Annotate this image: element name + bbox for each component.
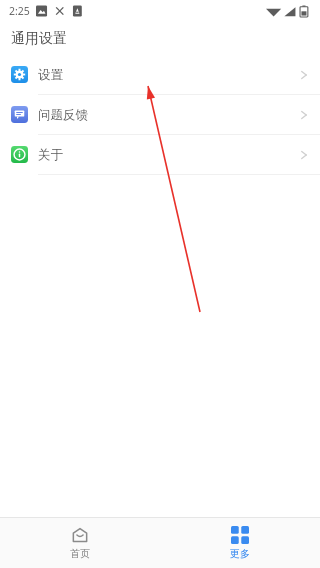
button[interactable]: 设置: [0, 55, 320, 94]
button[interactable]: 问题反馈: [0, 95, 320, 134]
button[interactable]: 首页: [0, 518, 160, 568]
button[interactable]: 关于: [0, 135, 320, 174]
staticText: 关于: [38, 147, 63, 163]
staticText: 问题反馈: [38, 107, 88, 123]
staticText: 2:25: [9, 4, 30, 18]
staticText: 更多: [230, 547, 250, 560]
staticText: 设置: [38, 67, 63, 83]
staticText: 通用设置: [11, 30, 67, 48]
button[interactable]: 更多: [160, 518, 320, 568]
staticText: 首页: [70, 547, 90, 560]
